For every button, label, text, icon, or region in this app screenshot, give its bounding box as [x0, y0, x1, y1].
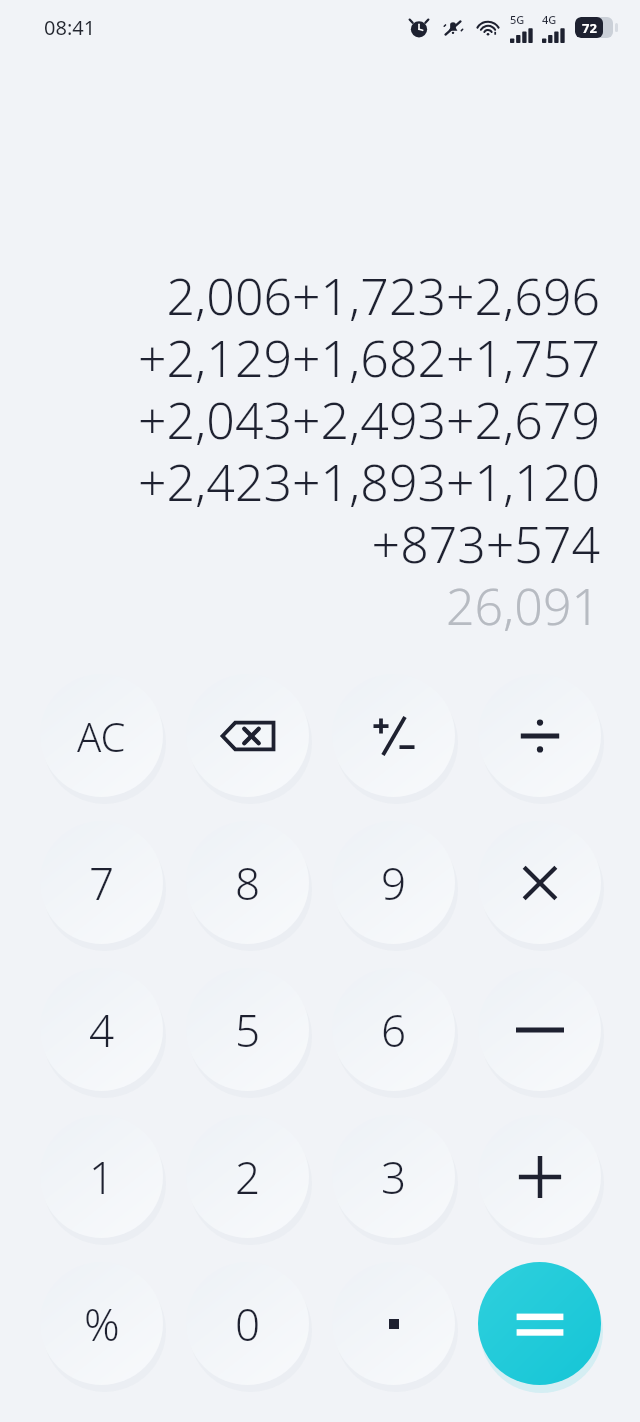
button[interactable]: Minus — [478, 968, 601, 1091]
button[interactable]: Plus — [478, 1115, 601, 1238]
button[interactable]: 0 — [186, 1262, 309, 1385]
button[interactable]: 3 — [332, 1115, 455, 1238]
button[interactable]: Backspace — [186, 674, 309, 797]
button[interactable]: 6 — [332, 968, 455, 1091]
button[interactable]: Equals — [478, 1262, 601, 1385]
button[interactable]: Percent — [40, 1262, 163, 1385]
staticText: 0 — [235, 1294, 261, 1354]
button[interactable]: Plus minus — [332, 674, 455, 797]
staticText: +2,043+2,493+2,679 — [138, 386, 600, 448]
staticText: +2,423+1,893+1,120 — [138, 448, 600, 510]
staticText: 4G — [542, 12, 557, 27]
button[interactable]: Decimal point — [332, 1262, 455, 1385]
button[interactable]: 4 — [40, 968, 163, 1091]
staticText: AC — [77, 709, 126, 763]
button[interactable]: 9 — [332, 821, 455, 944]
staticText: 9 — [381, 853, 407, 913]
staticText: 26,091 — [446, 572, 600, 634]
staticText: 5 — [235, 1000, 261, 1060]
staticText: 7 — [89, 853, 115, 913]
staticText: 2,006+1,723+2,696 — [166, 262, 600, 324]
staticText: +2,129+1,682+1,757 — [138, 324, 600, 386]
button[interactable]: 2 — [186, 1115, 309, 1238]
button[interactable]: 5 — [186, 968, 309, 1091]
staticText: 8 — [235, 853, 261, 913]
button[interactable]: AC — [40, 674, 163, 797]
button[interactable]: 1 — [40, 1115, 163, 1238]
staticText: 3 — [381, 1147, 407, 1207]
staticText: 5G — [510, 12, 525, 27]
staticText: 72 — [582, 19, 597, 37]
button[interactable]: Divide — [478, 674, 601, 797]
button[interactable]: Multiply — [478, 821, 601, 944]
button[interactable]: 7 — [40, 821, 163, 944]
staticText: 4 — [89, 1000, 115, 1060]
staticText: 2 — [235, 1147, 261, 1207]
staticText: % — [84, 1294, 120, 1354]
staticText: 08:41 — [44, 14, 96, 41]
button[interactable]: 8 — [186, 821, 309, 944]
staticText: 6 — [381, 1000, 407, 1060]
staticText: +873+574 — [371, 510, 600, 572]
staticText: 1 — [89, 1147, 115, 1207]
